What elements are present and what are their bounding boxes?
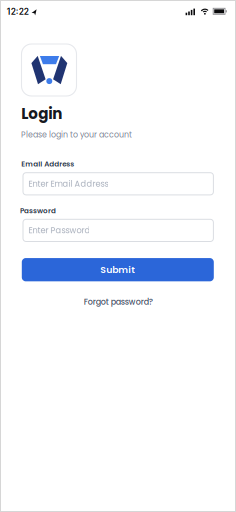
staticText: Email Address — [21, 159, 74, 169]
staticText: Please login to your account — [21, 129, 132, 140]
staticText: 12:22 — [7, 7, 29, 17]
button[interactable]: Enter Email Address — [23, 173, 213, 195]
staticText: Enter Password — [28, 225, 90, 236]
button[interactable]: Submit — [22, 258, 214, 281]
staticText: Login — [21, 103, 62, 124]
staticText: Submit — [100, 263, 135, 276]
button[interactable]: Enter Password — [23, 219, 213, 241]
staticText: Forgot password? — [84, 296, 153, 308]
staticText: Password — [20, 206, 56, 216]
button[interactable]: Forgot password? — [84, 296, 153, 308]
staticText: Enter Email Address — [28, 178, 108, 190]
